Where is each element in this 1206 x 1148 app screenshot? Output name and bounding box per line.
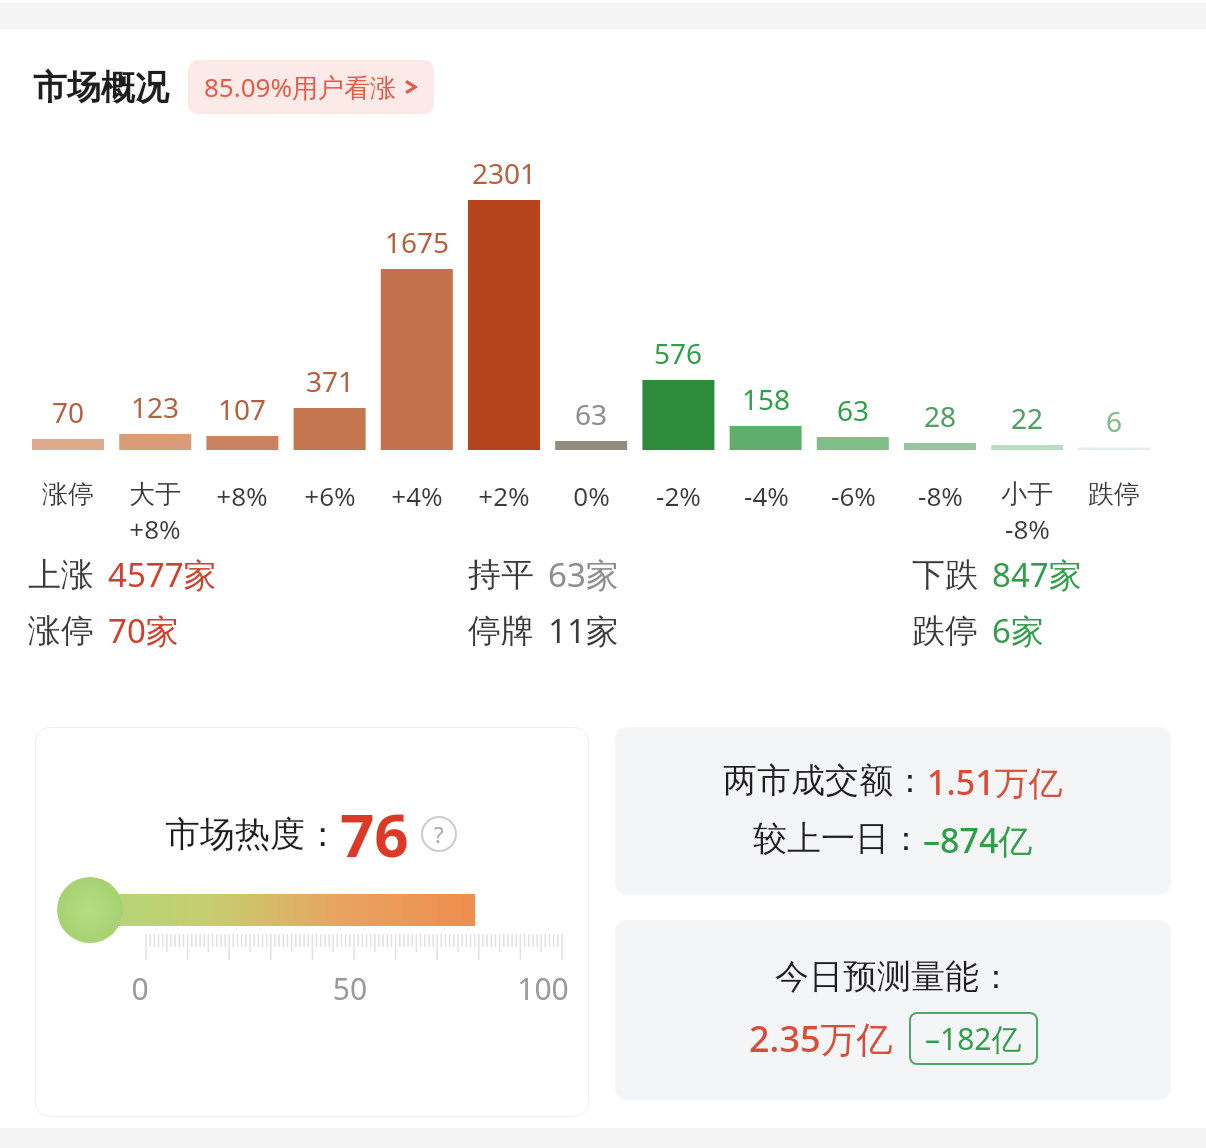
staticText: -6%: [831, 478, 876, 513]
staticText: 107: [182, 390, 302, 428]
staticText: 小于: [1001, 478, 1053, 511]
staticText: 持平: [468, 554, 534, 596]
staticText: 847家: [992, 552, 1082, 597]
staticText: -8%: [918, 478, 963, 513]
staticText: 1675: [357, 223, 477, 261]
staticText: 576: [618, 334, 738, 372]
staticText: 涨停: [42, 478, 94, 511]
staticText: 22: [967, 399, 1087, 437]
staticText: 100: [483, 968, 603, 1009]
staticText: 70家: [108, 608, 179, 653]
staticText: 下跌: [912, 554, 978, 596]
staticText: ?: [434, 819, 444, 849]
staticText: +4%: [391, 478, 443, 513]
staticText: 上涨: [28, 554, 94, 596]
staticText: 123: [95, 388, 215, 426]
staticText: -4%: [744, 478, 789, 513]
staticText: 1.51万亿: [927, 759, 1063, 805]
staticText: 158: [706, 380, 826, 418]
staticText: 两市成交额：: [723, 759, 927, 802]
staticText: 2.35万亿: [749, 1014, 893, 1063]
button[interactable]: 帮助: [421, 816, 457, 852]
staticText: +8%: [216, 478, 268, 513]
staticText: 跌停: [1088, 478, 1140, 511]
staticText: 市场热度：: [165, 812, 340, 856]
staticText: +8%: [129, 511, 181, 546]
staticText: 76: [340, 793, 409, 875]
button[interactable]: 今日预测量能：: [615, 920, 1171, 1100]
staticText: –874亿: [923, 817, 1033, 863]
staticText: +2%: [478, 478, 530, 513]
staticText: 6: [1054, 402, 1174, 440]
staticText: 大于: [129, 478, 181, 511]
button[interactable]: 85.09%用户看涨: [188, 60, 434, 114]
staticText: -2%: [656, 478, 701, 513]
staticText: –182亿: [925, 1018, 1022, 1059]
staticText: 跌停: [912, 610, 978, 652]
staticText: 63家: [548, 552, 619, 597]
staticText: 2301: [444, 154, 564, 192]
staticText: 涨停: [28, 610, 94, 652]
staticText: 371: [270, 362, 390, 400]
staticText: 63: [793, 391, 913, 429]
staticText: 0: [80, 968, 200, 1009]
staticText: 0%: [573, 478, 610, 513]
staticText: -8%: [1005, 511, 1050, 546]
staticText: 今日预测量能：: [775, 955, 1013, 998]
staticText: 11家: [548, 608, 619, 653]
staticText: 4577家: [108, 552, 217, 597]
staticText: 63: [531, 395, 651, 433]
staticText: 70: [8, 393, 128, 431]
staticText: 28: [880, 397, 1000, 435]
staticText: 85.09%用户看涨: [204, 69, 397, 105]
staticText: +6%: [304, 478, 356, 513]
staticText: 6家: [992, 608, 1044, 653]
staticText: 较上一日：: [753, 817, 923, 860]
staticText: 市场概况: [33, 66, 169, 109]
staticText: 50: [290, 968, 410, 1009]
staticText: 停牌: [468, 610, 534, 652]
button[interactable]: 两市成交额：: [615, 727, 1171, 895]
button[interactable]: [35, 727, 589, 1117]
